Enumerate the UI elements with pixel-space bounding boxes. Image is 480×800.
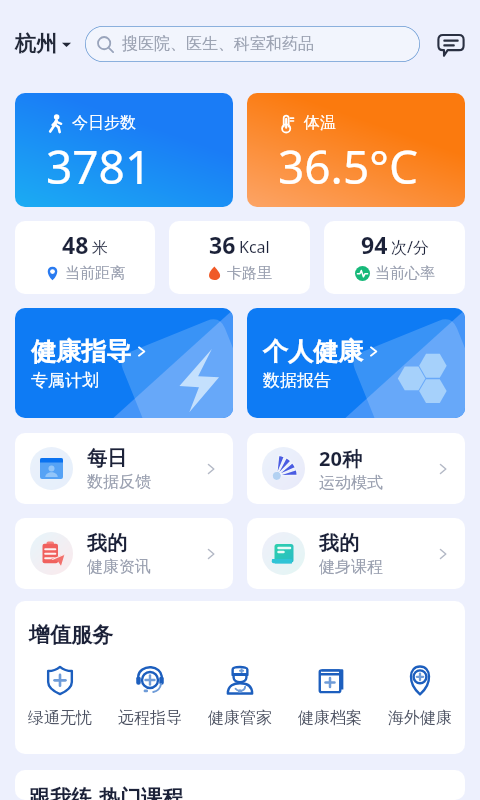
button[interactable]: 体温: [247, 93, 465, 207]
staticText: 搜医院、医生、科室和药品: [122, 34, 314, 54]
button[interactable]: 今日步数: [15, 93, 233, 207]
staticText: 杭州: [15, 31, 57, 57]
button[interactable]: 健康管家: [195, 664, 285, 728]
button[interactable]: Messages: [435, 28, 467, 60]
button[interactable]: 每日: [15, 433, 233, 504]
button[interactable]: 健康指导: [15, 308, 233, 418]
staticText: 3781: [46, 135, 152, 198]
staticText: 运动模式: [319, 473, 383, 493]
staticText: 体温: [304, 113, 336, 133]
staticText: 跟我练: [29, 785, 92, 800]
staticText: 36.5°C: [278, 135, 419, 198]
staticText: 远程指导: [118, 708, 182, 728]
staticText: 今日步数: [72, 113, 136, 133]
staticText: 热门课程: [99, 785, 183, 800]
staticText: 卡路里: [227, 264, 272, 283]
staticText: Kcal: [239, 236, 270, 258]
staticText: 个人健康: [263, 336, 363, 367]
button[interactable]: 48: [15, 221, 155, 294]
button[interactable]: 20种: [247, 433, 465, 504]
staticText: 健康档案: [298, 708, 362, 728]
button[interactable]: 我的: [15, 518, 233, 589]
staticText: 米: [92, 238, 108, 258]
staticText: 当前距离: [65, 264, 125, 283]
staticText: 94: [361, 229, 388, 260]
staticText: 20种: [319, 445, 362, 472]
button[interactable]: 远程指导: [105, 664, 195, 728]
staticText: 健身课程: [319, 557, 383, 577]
staticText: 次/分: [391, 236, 429, 258]
staticText: 健康指导: [31, 336, 131, 367]
staticText: 增值服务: [29, 622, 113, 648]
button[interactable]: 我的: [247, 518, 465, 589]
staticText: 数据报告: [263, 370, 331, 391]
staticText: 健康资讯: [87, 557, 151, 577]
staticText: 当前心率: [375, 264, 435, 283]
button[interactable]: 搜医院、医生、科室和药品: [85, 26, 420, 62]
staticText: 数据反馈: [87, 472, 151, 492]
button[interactable]: 个人健康: [247, 308, 465, 418]
staticText: 专属计划: [31, 370, 99, 391]
button[interactable]: 绿通无忧: [15, 664, 105, 728]
staticText: 每日: [87, 446, 127, 471]
button[interactable]: 94: [324, 221, 465, 294]
button[interactable]: 健康档案: [285, 664, 375, 728]
staticText: 36: [209, 229, 236, 260]
staticText: 健康管家: [208, 708, 272, 728]
staticText: 海外健康: [388, 708, 452, 728]
staticText: 我的: [319, 531, 359, 556]
button[interactable]: 36: [169, 221, 310, 294]
button[interactable]: 杭州: [15, 31, 71, 57]
staticText: 我的: [87, 531, 127, 556]
button[interactable]: 海外健康: [375, 664, 465, 728]
staticText: 48: [62, 229, 89, 260]
staticText: 绿通无忧: [28, 708, 92, 728]
